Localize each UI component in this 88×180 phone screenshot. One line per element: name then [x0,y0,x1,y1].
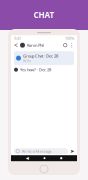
staticText: < [14,41,18,50]
button[interactable]: Search [63,43,67,47]
staticText: ➤ [70,148,74,154]
staticText: Group Chat · Dec 28 [23,53,58,58]
button[interactable]: Recents [60,157,62,159]
button[interactable]: Send [70,148,74,154]
staticText: Write a Message [21,148,51,154]
button[interactable]: < [14,41,18,50]
staticText: 9:41 [14,35,21,41]
staticText: Yes how? · Dec 28 [20,67,51,72]
button[interactable]: Back [26,156,29,160]
staticText: 100% [65,35,74,41]
button[interactable]: Home [43,157,45,159]
staticText: ◀ [26,156,29,160]
button[interactable]: More [69,42,74,48]
staticText: Hello [23,59,31,63]
staticText: CHAT [33,10,54,20]
staticText: ⋮ [69,42,74,48]
staticText: Karen Phil [27,42,44,48]
